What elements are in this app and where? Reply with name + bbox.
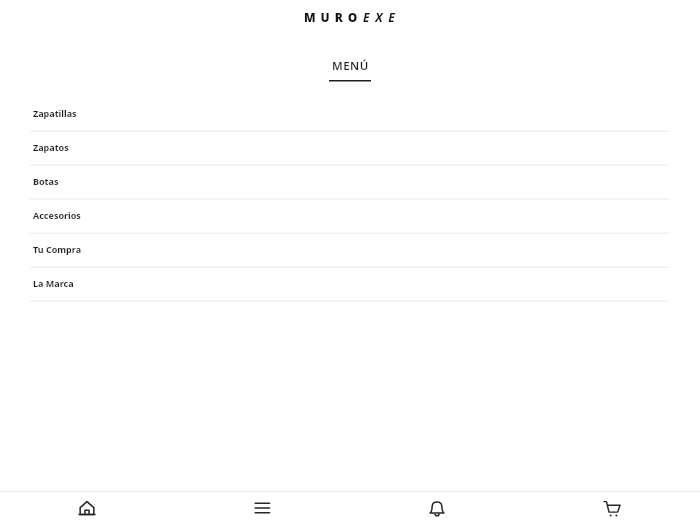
staticText: MENÚ xyxy=(332,58,369,74)
staticText: Tu Compra xyxy=(33,243,82,255)
staticText: EXE xyxy=(363,9,401,25)
button[interactable]: Zapatillas xyxy=(0,98,700,132)
button[interactable]: Notifications xyxy=(350,492,525,525)
button[interactable]: MENÚ xyxy=(319,50,381,86)
staticText: Accesorios xyxy=(33,209,81,221)
button[interactable]: La Marca xyxy=(0,268,700,302)
button[interactable]: Zapatos xyxy=(0,132,700,166)
button[interactable]: Home xyxy=(0,492,175,525)
button[interactable]: Shopping cart xyxy=(525,492,700,525)
staticText: La Marca xyxy=(33,277,74,289)
button[interactable]: Menu xyxy=(175,492,350,525)
button[interactable]: MUROEXE home xyxy=(298,4,407,31)
button[interactable]: Accesorios xyxy=(0,200,700,234)
staticText: MURO xyxy=(304,9,363,25)
staticText: Zapatos xyxy=(33,141,69,153)
staticText: Zapatillas xyxy=(33,107,77,119)
button[interactable]: Botas xyxy=(0,166,700,200)
button[interactable]: Tu Compra xyxy=(0,234,700,268)
staticText: Botas xyxy=(33,175,59,187)
